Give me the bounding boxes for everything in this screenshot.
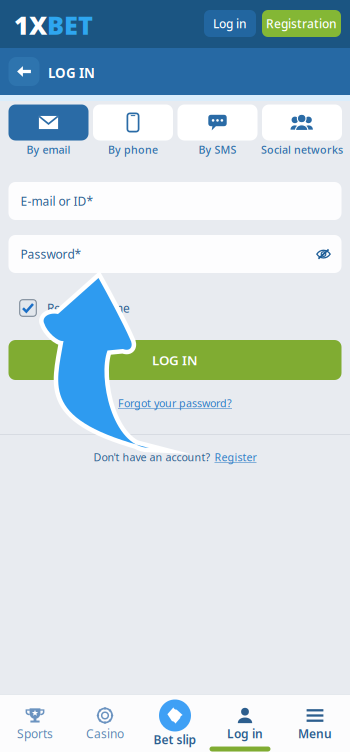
staticText: Registration (266, 15, 337, 31)
staticText: E-mail or ID* (20, 193, 93, 209)
button[interactable]: Remember me (19, 297, 239, 319)
staticText: Social networks (261, 142, 343, 157)
staticText: Log in (227, 725, 263, 741)
staticText: By email (26, 142, 70, 157)
staticText: By SMS (198, 142, 236, 157)
staticText: Casino (86, 725, 124, 741)
staticText: BET (47, 8, 93, 42)
staticText: By phone (108, 142, 158, 157)
button[interactable]: Log in (210, 705, 280, 740)
staticText: 1X (14, 8, 47, 42)
staticText: Sports (17, 725, 53, 741)
staticText: Password* (20, 246, 81, 262)
button[interactable]: By email (8, 104, 88, 158)
button[interactable]: Register (214, 450, 256, 464)
button[interactable]: Show password (309, 240, 337, 268)
staticText: Forgot your password? (118, 396, 232, 410)
staticText: LOG IN (48, 64, 95, 82)
button[interactable]: Menu (280, 705, 350, 740)
button[interactable]: Forgot your password? (0, 392, 350, 414)
button[interactable]: LOG IN (8, 340, 341, 380)
staticText: LOG IN (152, 351, 198, 369)
staticText: Don't have an account? (93, 450, 210, 464)
button[interactable]: By phone (93, 104, 173, 158)
button[interactable]: Back (8, 57, 39, 86)
staticText: Remember me (47, 300, 130, 316)
button[interactable]: Sports (0, 705, 70, 740)
staticText: Bet slip (153, 731, 196, 747)
button[interactable]: Social networks (262, 104, 342, 158)
button[interactable]: Log in (204, 10, 256, 37)
button[interactable]: By SMS (177, 104, 257, 158)
staticText: Log in (213, 15, 247, 31)
button[interactable]: Bet slip (140, 699, 210, 746)
button[interactable]: Registration (262, 10, 341, 37)
staticText: Register (214, 450, 256, 464)
button[interactable]: Casino (70, 705, 140, 740)
staticText: Menu (298, 725, 332, 741)
